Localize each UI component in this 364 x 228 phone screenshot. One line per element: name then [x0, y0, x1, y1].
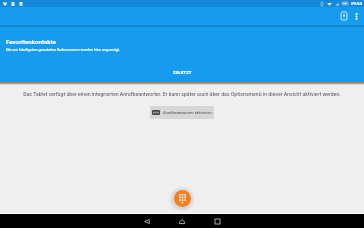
button[interactable]: Anrufbeantworter aktivieren [150, 106, 214, 119]
staticText: ZULETZT [173, 70, 192, 75]
button[interactable]: ZULETZT [147, 63, 217, 82]
button[interactable]: Recent apps [210, 214, 224, 228]
button[interactable]: Search contacts [338, 10, 350, 22]
staticText: Anrufbeantworter aktivieren [163, 110, 212, 115]
button[interactable]: Back [140, 214, 154, 228]
staticText: Favoritenkontakte [6, 38, 56, 45]
button[interactable]: Dialpad [174, 190, 191, 207]
staticText: Die am häufigsten genutzten Rufnummern w… [6, 47, 120, 52]
staticText: Das Tablet verfügt über einen integriert… [23, 91, 341, 97]
staticText: 09:54 [351, 1, 362, 6]
button[interactable]: Home [175, 214, 189, 228]
button[interactable]: More options [351, 11, 361, 21]
